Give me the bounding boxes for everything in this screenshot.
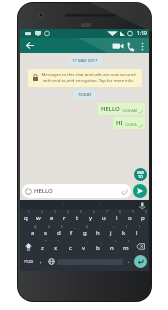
button[interactable]: Attach (121, 188, 128, 195)
button[interactable]: * (36, 239, 49, 254)
staticText: 12:38 AM (122, 108, 137, 113)
staticText: 9 (132, 210, 134, 214)
button[interactable]: ; (91, 239, 105, 254)
staticText: 2 (41, 210, 43, 214)
staticText: 12:39 A (125, 122, 137, 127)
button[interactable]: ) (130, 224, 143, 239)
staticText: b (96, 244, 100, 252)
button[interactable]: : (77, 239, 91, 254)
staticText: u (102, 214, 106, 222)
button[interactable]: HI (113, 117, 145, 129)
button[interactable]: Messages to this chat and calls are now … (28, 69, 142, 87)
button[interactable]: , (36, 254, 46, 269)
button[interactable]: ! (105, 239, 119, 254)
staticText: ! (115, 240, 116, 244)
button[interactable]: ( (117, 224, 130, 239)
staticText: 4 (67, 210, 69, 214)
button[interactable]: Shift (21, 239, 36, 254)
staticText: ; (101, 240, 102, 244)
staticText: TODAY (78, 92, 92, 98)
button[interactable]: Change language (46, 254, 57, 269)
button[interactable]: HELLO (98, 103, 145, 115)
button[interactable]: ?123 (22, 254, 36, 269)
staticText: HELLO (34, 187, 53, 195)
button[interactable]: ? (119, 239, 133, 254)
button[interactable]: Backspace (133, 239, 148, 254)
button[interactable]: 0 (136, 209, 149, 224)
button[interactable]: & (78, 224, 91, 239)
staticText: ' (73, 240, 74, 244)
staticText: f (70, 229, 73, 237)
button[interactable]: # (39, 224, 52, 239)
staticText: 1 (28, 210, 30, 214)
button[interactable]: " (49, 239, 63, 254)
staticText: * (45, 240, 47, 244)
button[interactable]: 3 (45, 209, 58, 224)
button[interactable]: More options (137, 41, 148, 52)
staticText: , (40, 258, 42, 265)
button[interactable]: - (91, 224, 104, 239)
button[interactable]: @ (26, 224, 39, 239)
staticText: g (83, 229, 87, 237)
staticText: _ (74, 225, 76, 229)
staticText: + (113, 225, 115, 229)
staticText: Messages to this chat and calls are now … (39, 72, 138, 84)
button[interactable]: 1 (20, 209, 32, 224)
staticText: l (136, 229, 138, 237)
staticText: r (63, 214, 66, 222)
staticText: . (128, 258, 130, 265)
button[interactable]: 4 (58, 209, 71, 224)
staticText: ? (128, 240, 130, 244)
staticText: x (54, 244, 58, 252)
button[interactable]: Send (133, 184, 147, 198)
button[interactable]: . (123, 254, 134, 269)
staticText: v (82, 244, 86, 252)
staticText: w (36, 214, 41, 222)
button[interactable]: Back (22, 39, 35, 52)
staticText: # (48, 225, 50, 229)
button[interactable]: + (104, 224, 117, 239)
button[interactable]: Enter (134, 255, 147, 268)
staticText: ) (139, 225, 140, 229)
button[interactable]: Call (123, 39, 137, 53)
staticText: d (57, 229, 61, 237)
button[interactable]: $ (52, 224, 65, 239)
button[interactable]: HELLO (22, 184, 131, 198)
staticText: : (87, 240, 88, 244)
staticText: q (24, 214, 28, 222)
staticText: z (41, 244, 44, 252)
staticText: 3 (54, 210, 56, 214)
button[interactable]: 6 (84, 209, 97, 224)
staticText: 17 MAY 2017 (72, 58, 98, 64)
staticText: 8 (119, 210, 121, 214)
staticText: m (123, 244, 129, 252)
staticText: 0 (145, 210, 147, 214)
staticText: ( (126, 225, 127, 229)
button[interactable]: _ (65, 224, 78, 239)
staticText: 5 (80, 210, 82, 214)
staticText: j (110, 229, 112, 237)
staticText: a (31, 229, 35, 237)
staticText: p (141, 214, 145, 222)
staticText: 1:19 (137, 30, 147, 37)
staticText: $ (61, 225, 63, 229)
staticText: y (89, 214, 93, 222)
staticText: " (58, 240, 60, 244)
staticText: o (128, 214, 132, 222)
button[interactable]: 5 (71, 209, 84, 224)
staticText: HI (116, 119, 123, 127)
staticText: HELLO (101, 105, 120, 113)
staticText: e (50, 214, 54, 222)
staticText: i (116, 214, 118, 222)
staticText: - (100, 225, 101, 229)
button[interactable]: ' (63, 239, 77, 254)
button[interactable]: 2 (32, 209, 45, 224)
button[interactable]: Video call (109, 39, 123, 53)
button[interactable]: Scroll to bottom (134, 168, 147, 181)
button[interactable]: 9 (123, 209, 136, 224)
staticText: 6 (93, 210, 95, 214)
button[interactable]: 8 (110, 209, 123, 224)
button[interactable]: 7 (97, 209, 110, 224)
staticText: t (76, 214, 79, 222)
